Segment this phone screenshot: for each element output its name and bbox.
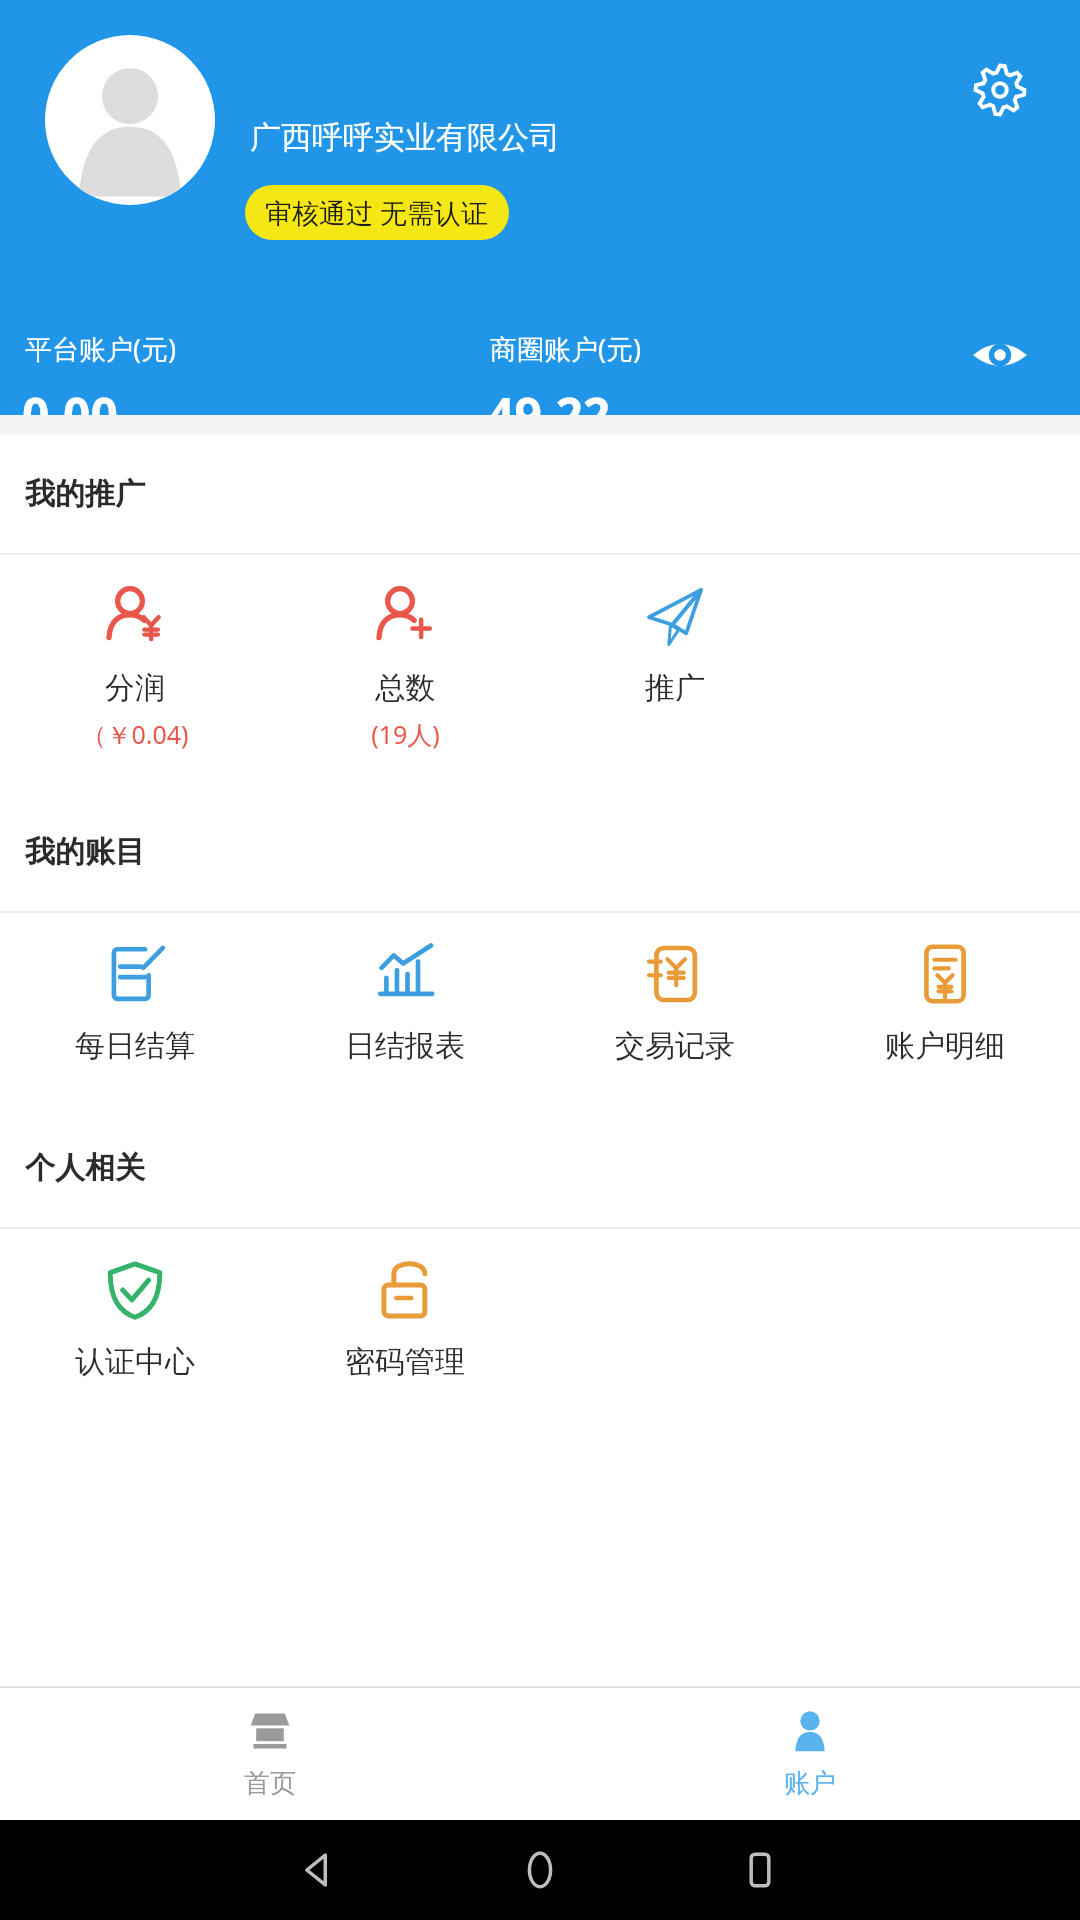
button[interactable]: Settings bbox=[955, 45, 1045, 135]
staticText: 审核通过 无需认证 bbox=[265, 194, 489, 231]
staticText: 个人相关 bbox=[25, 1149, 145, 1187]
staticText: 49.22 bbox=[487, 382, 611, 447]
staticText: 0.00 bbox=[22, 382, 118, 447]
button[interactable]: Toggle balance visibility bbox=[945, 310, 1055, 400]
staticText: 账户 bbox=[784, 1767, 836, 1800]
staticText: 每日结算 bbox=[75, 1027, 195, 1065]
button[interactable]: 账户明细 bbox=[810, 913, 1080, 1075]
button[interactable]: 审核通过 无需认证 bbox=[245, 185, 509, 240]
button[interactable]: 认证中心 bbox=[0, 1229, 270, 1391]
button[interactable]: Avatar bbox=[45, 35, 215, 205]
button[interactable]: 每日结算 bbox=[0, 913, 270, 1075]
staticText: (19人) bbox=[371, 717, 440, 751]
staticText: 交易记录 bbox=[615, 1027, 735, 1065]
staticText: 推广 bbox=[645, 669, 705, 707]
button[interactable]: 分润 bbox=[0, 555, 270, 761]
button[interactable]: 账户 bbox=[540, 1688, 1080, 1820]
button[interactable]: 总数 bbox=[270, 555, 540, 761]
staticText: 商圈账户(元) bbox=[490, 330, 642, 367]
staticText: 认证中心 bbox=[75, 1343, 195, 1381]
staticText: （￥0.04) bbox=[81, 717, 189, 751]
button[interactable]: 密码管理 bbox=[270, 1229, 540, 1391]
staticText: 我的推广 bbox=[25, 475, 145, 513]
staticText: 总数 bbox=[375, 669, 435, 707]
staticText: 平台账户(元) bbox=[25, 330, 177, 367]
button[interactable]: 推广 bbox=[540, 555, 810, 717]
button[interactable]: 日结报表 bbox=[270, 913, 540, 1075]
staticText: 分润 bbox=[105, 669, 165, 707]
button[interactable]: 首页 bbox=[0, 1688, 540, 1820]
button[interactable]: 交易记录 bbox=[540, 913, 810, 1075]
staticText: 账户明细 bbox=[885, 1027, 1005, 1065]
staticText: 我的账目 bbox=[25, 833, 145, 871]
staticText: 日结报表 bbox=[345, 1027, 465, 1065]
staticText: 广西呼呼实业有限公司 bbox=[250, 118, 560, 157]
staticText: 密码管理 bbox=[345, 1343, 465, 1381]
staticText: 首页 bbox=[244, 1767, 296, 1800]
